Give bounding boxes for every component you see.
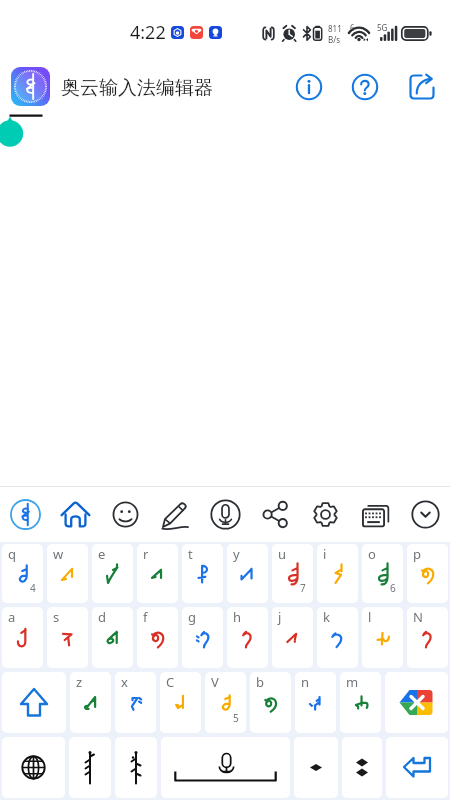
button[interactable]: Keyboard bbox=[350, 487, 400, 542]
staticText: m bbox=[346, 673, 359, 691]
staticText: N bbox=[413, 608, 423, 626]
staticText: y bbox=[233, 545, 240, 563]
staticText: 6 bbox=[350, 22, 355, 33]
button[interactable]: Share bbox=[250, 487, 300, 542]
staticText: w bbox=[53, 545, 64, 563]
staticText: 811 bbox=[328, 23, 342, 34]
button[interactable]: N bbox=[407, 607, 448, 668]
staticText: p bbox=[413, 545, 421, 563]
staticText: 6 bbox=[390, 581, 396, 595]
button[interactable]: Collapse bbox=[400, 487, 450, 542]
button[interactable]: k bbox=[317, 607, 358, 668]
button[interactable]: n bbox=[295, 672, 336, 733]
staticText: 奥云输入法编辑器 bbox=[61, 76, 213, 100]
button[interactable]: Help bbox=[348, 70, 382, 104]
staticText: a bbox=[8, 608, 16, 626]
button[interactable]: b bbox=[250, 672, 291, 733]
button[interactable]: x bbox=[115, 672, 156, 733]
button[interactable]: Space bbox=[161, 737, 290, 798]
staticText: j bbox=[278, 608, 282, 626]
staticText: i bbox=[323, 545, 327, 563]
staticText: q bbox=[8, 545, 16, 563]
staticText: l bbox=[368, 608, 372, 626]
button[interactable]: Handwrite bbox=[150, 487, 200, 542]
button[interactable]: r bbox=[137, 544, 178, 603]
staticText: d bbox=[98, 608, 106, 626]
staticText: z bbox=[76, 673, 83, 691]
staticText: V bbox=[211, 673, 219, 691]
button[interactable]: j bbox=[272, 607, 313, 668]
button[interactable]: Voice bbox=[200, 487, 250, 542]
button[interactable]: z bbox=[70, 672, 111, 733]
button[interactable]: C bbox=[160, 672, 201, 733]
button[interactable]: e bbox=[92, 544, 133, 603]
button[interactable]: Home bbox=[50, 487, 100, 542]
staticText: 5G bbox=[377, 22, 388, 33]
button[interactable]: m bbox=[340, 672, 381, 733]
button[interactable]: Delete bbox=[385, 672, 448, 733]
staticText: h bbox=[233, 608, 242, 626]
button[interactable]: Mongolian bbox=[115, 737, 157, 798]
staticText: n bbox=[301, 673, 310, 691]
staticText: u bbox=[278, 545, 287, 563]
button[interactable]: More bbox=[342, 737, 382, 798]
button[interactable]: p bbox=[407, 544, 448, 603]
staticText: 4:22 bbox=[130, 20, 166, 45]
button[interactable]: g bbox=[182, 607, 223, 668]
button[interactable]: V bbox=[205, 672, 246, 733]
button[interactable]: q bbox=[2, 544, 43, 603]
button[interactable]: f bbox=[137, 607, 178, 668]
staticText: x bbox=[121, 673, 128, 691]
staticText: s bbox=[53, 608, 60, 626]
button[interactable]: i bbox=[317, 544, 358, 603]
staticText: 4 bbox=[30, 581, 36, 595]
button[interactable]: y bbox=[227, 544, 268, 603]
staticText: f bbox=[143, 608, 148, 626]
staticText: r bbox=[143, 545, 149, 563]
staticText: k bbox=[323, 608, 330, 626]
button[interactable]: Language bbox=[2, 737, 65, 798]
staticText: B/s bbox=[328, 34, 341, 45]
button[interactable]: Info bbox=[292, 70, 326, 104]
button[interactable]: l bbox=[362, 607, 403, 668]
button[interactable]: Emoji bbox=[100, 487, 150, 542]
button[interactable]: Shift bbox=[2, 672, 66, 733]
staticText: C bbox=[166, 673, 175, 691]
button[interactable]: Symbol bbox=[294, 737, 338, 798]
button[interactable]: d bbox=[92, 607, 133, 668]
button[interactable]: Settings bbox=[300, 487, 350, 542]
button[interactable]: w bbox=[47, 544, 88, 603]
staticText: 5 bbox=[233, 711, 239, 725]
button[interactable]: Mongolian bbox=[69, 737, 111, 798]
staticText: 7 bbox=[300, 581, 306, 595]
button[interactable]: Mongolian mode bbox=[0, 487, 50, 542]
button[interactable]: u bbox=[272, 544, 313, 603]
button[interactable]: t bbox=[182, 544, 223, 603]
button[interactable]: App icon bbox=[11, 67, 50, 106]
staticText: g bbox=[188, 608, 196, 626]
button[interactable]: Enter bbox=[386, 737, 448, 798]
staticText: e bbox=[98, 545, 106, 563]
button[interactable]: h bbox=[227, 607, 268, 668]
staticText: o bbox=[368, 545, 376, 563]
staticText: t bbox=[188, 545, 193, 563]
staticText: b bbox=[256, 673, 264, 691]
button[interactable]: a bbox=[2, 607, 43, 668]
button[interactable]: o bbox=[362, 544, 403, 603]
button[interactable]: Share bbox=[405, 70, 439, 104]
button[interactable]: s bbox=[47, 607, 88, 668]
